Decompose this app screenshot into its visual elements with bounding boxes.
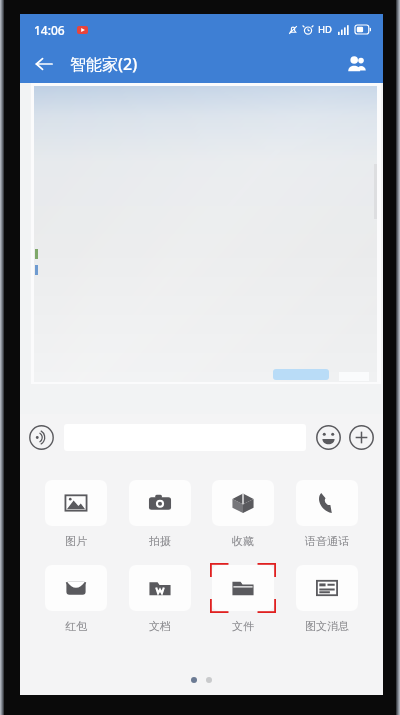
button[interactable]: Members — [339, 46, 375, 82]
button[interactable]: 语音通话 — [290, 478, 364, 548]
staticText: 文件 — [232, 619, 254, 633]
button[interactable]: More options — [348, 424, 375, 451]
staticText: 收藏 — [232, 534, 254, 548]
button[interactable]: 图文消息 — [290, 563, 364, 633]
button[interactable]: 收藏 — [206, 478, 280, 548]
staticText: HD — [318, 23, 333, 36]
button[interactable]: Emoji — [315, 424, 342, 451]
button[interactable]: Back — [26, 46, 62, 82]
button[interactable]: 图片 — [39, 478, 113, 548]
staticText: 语音通话 — [305, 534, 349, 548]
staticText: 图片 — [65, 534, 87, 548]
staticText: 红包 — [65, 619, 87, 633]
staticText: 14:06 — [34, 22, 65, 38]
button[interactable]: 文档 — [123, 563, 197, 633]
staticText: 图文消息 — [305, 619, 349, 633]
staticText: 智能家(2) — [70, 53, 138, 75]
button[interactable]: 拍摄 — [123, 478, 197, 548]
button[interactable]: 文件 — [206, 563, 280, 633]
staticText: 拍摄 — [149, 534, 171, 548]
button[interactable]: Voice input — [28, 424, 55, 451]
staticText: 文档 — [149, 619, 171, 633]
button[interactable]: 红包 — [39, 563, 113, 633]
